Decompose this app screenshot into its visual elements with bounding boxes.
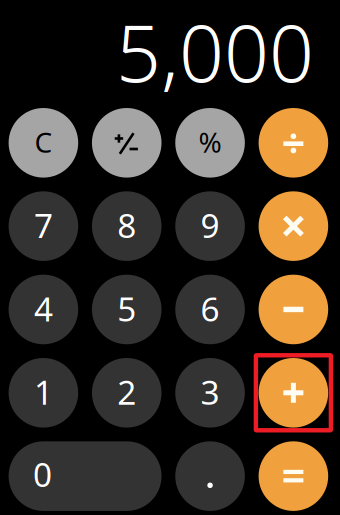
button[interactable]: 9 [175,191,245,261]
staticText: 9 [201,203,220,247]
button[interactable]: 1 [9,358,78,428]
button[interactable]: 8 [92,191,161,261]
staticText: 2 [117,370,136,414]
staticText: 1 [34,370,53,414]
button[interactable]: Multiply [259,191,328,261]
button[interactable]: Plus minus [92,108,161,178]
button[interactable]: 5 [92,275,161,344]
button[interactable]: Plus [259,358,328,428]
button[interactable]: % [175,108,245,178]
staticText: % [199,123,222,160]
button[interactable]: Divide [259,108,328,178]
button[interactable]: Minus [259,275,328,344]
staticText: 7 [34,203,53,247]
staticText: 5,000 [116,0,314,104]
button[interactable]: C [9,108,78,178]
button[interactable]: 0 [9,441,161,511]
button[interactable]: 2 [92,358,161,428]
staticText: 6 [201,286,220,331]
button[interactable]: 6 [175,275,245,344]
button[interactable]: 3 [175,358,245,428]
staticText: 0 [33,452,52,496]
staticText: 8 [117,203,136,247]
staticText: C [34,123,52,160]
button[interactable]: 7 [9,191,78,261]
button[interactable]: Decimal point [175,441,245,511]
button[interactable]: 4 [9,275,78,344]
staticText: 5 [117,286,136,331]
button[interactable]: Equals [259,441,328,511]
staticText: 3 [201,370,220,414]
staticText: 4 [34,286,53,331]
